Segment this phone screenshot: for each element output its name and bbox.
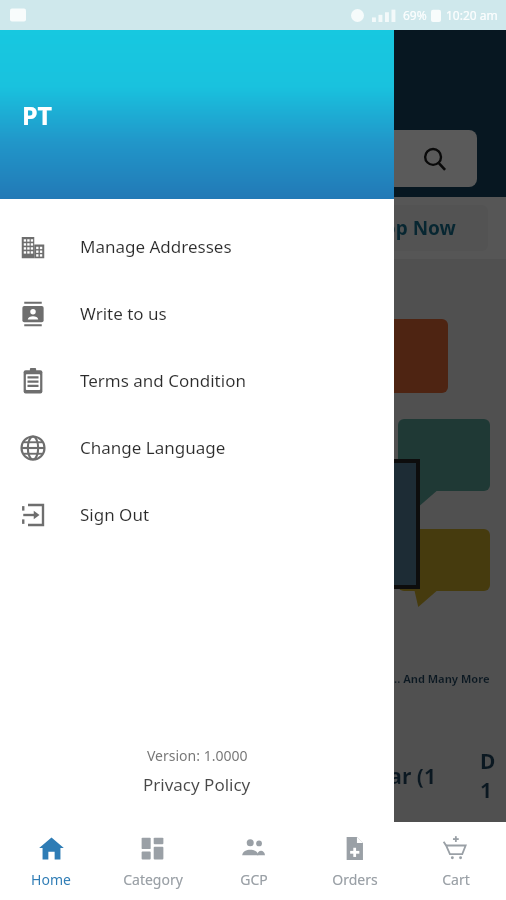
button[interactable]: Change Language — [0, 414, 394, 481]
staticText: Popular (1 — [330, 762, 436, 791]
staticText: Version: 1.0000 — [147, 746, 248, 765]
staticText: Category — [123, 870, 183, 889]
staticText: Sign Out — [80, 503, 150, 526]
button[interactable]: Terms and Condition — [0, 347, 394, 414]
staticText: D 1 — [480, 747, 496, 805]
button[interactable]: Home — [0, 822, 102, 900]
staticText: Terms and Condition — [80, 369, 246, 392]
button[interactable]: Orders — [304, 822, 405, 900]
staticText: 10:20 am — [446, 7, 498, 23]
staticText: Orders — [332, 870, 378, 889]
staticText: ... And Many More — [391, 671, 490, 686]
staticText: Write to us — [80, 302, 167, 325]
button[interactable] — [24, 130, 477, 187]
button[interactable]: Sign Out — [0, 481, 394, 548]
button[interactable]: Cart — [405, 822, 506, 900]
staticText: Home — [31, 870, 71, 889]
staticText: Manage Addresses — [80, 235, 232, 258]
staticText: Cart — [442, 870, 470, 889]
button[interactable]: Write to us — [0, 280, 394, 347]
staticText: Shop Now — [361, 215, 456, 241]
staticText: PT — [22, 98, 52, 132]
staticText: 69% — [403, 7, 427, 23]
button[interactable]: Shop Now — [328, 205, 488, 251]
button[interactable]: GCP — [203, 822, 304, 900]
button[interactable]: Category — [102, 822, 203, 900]
staticText: Change Language — [80, 436, 226, 459]
button[interactable]: Privacy Policy — [137, 771, 257, 798]
staticText: GCP — [240, 870, 268, 889]
button[interactable]: Manage Addresses — [0, 213, 394, 280]
